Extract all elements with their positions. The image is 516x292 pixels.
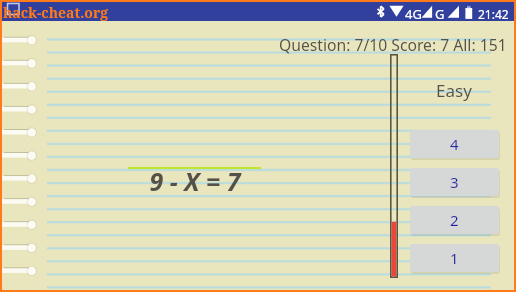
staticText: 2: [450, 210, 459, 230]
button[interactable]: 1: [410, 244, 499, 272]
staticText: G: [435, 5, 445, 23]
button[interactable]: 4: [410, 130, 499, 158]
staticText: 3: [450, 172, 459, 192]
staticText: 9 - X = 7: [149, 164, 241, 198]
staticText: hack-cheat.org: [3, 3, 109, 22]
button[interactable]: 3: [410, 168, 499, 196]
staticText: 1: [450, 248, 459, 268]
staticText: Question: 7/10 Score: 7 All: 151: [279, 34, 507, 55]
staticText: 4G: [405, 5, 422, 23]
staticText: 4: [450, 134, 459, 154]
button[interactable]: 2: [410, 206, 499, 234]
staticText: Easy: [436, 79, 472, 102]
staticText: 21:42: [478, 6, 509, 22]
